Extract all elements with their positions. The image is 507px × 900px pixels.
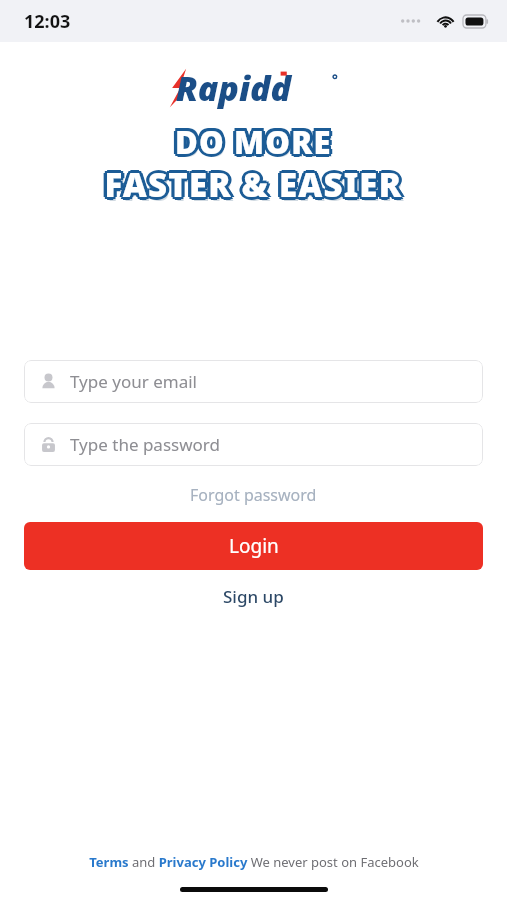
- staticText: 12:03: [24, 9, 71, 34]
- button[interactable]: Sign up: [24, 581, 483, 612]
- button[interactable]: Type your email: [24, 360, 483, 403]
- staticText: Sign up: [223, 585, 284, 608]
- staticText: Type your email: [70, 370, 197, 393]
- button[interactable]: Type the password: [24, 423, 483, 466]
- staticText: Terms and Privacy Policy We never post o…: [89, 853, 419, 871]
- button[interactable]: Terms and Privacy Policy We never post o…: [79, 851, 429, 873]
- button[interactable]: Forgot password: [24, 481, 483, 509]
- staticText: Forgot password: [190, 484, 317, 506]
- button[interactable]: Login: [24, 522, 483, 570]
- staticText: Type the password: [70, 433, 220, 456]
- staticText: Login: [229, 533, 279, 559]
